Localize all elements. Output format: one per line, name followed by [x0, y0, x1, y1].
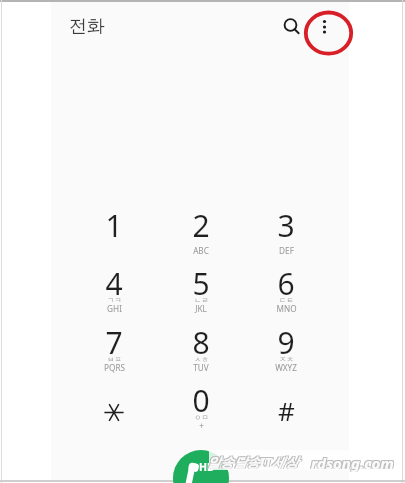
button[interactable]	[243, 385, 329, 443]
staticText: WXYZ	[275, 362, 297, 373]
button[interactable]: Star	[71, 386, 157, 438]
staticText: JKL	[195, 303, 207, 314]
button[interactable]: 전화	[62, 6, 98, 46]
staticText: 알송달송IT세상	[208, 453, 300, 471]
staticText: 알송달송IT세상	[208, 452, 300, 470]
staticText: GHI	[107, 303, 122, 314]
staticText: 4	[105, 263, 123, 304]
staticText: DEF	[279, 245, 294, 256]
staticText: ㅈㅊ	[279, 355, 294, 364]
button[interactable]	[158, 199, 244, 257]
button[interactable]: More options	[304, 8, 354, 58]
button[interactable]	[243, 316, 329, 374]
button[interactable]	[71, 316, 157, 374]
staticText: ㅅㅎ	[194, 355, 209, 364]
staticText: ㄷㅌ	[279, 296, 294, 305]
staticText: rdsong.com	[312, 452, 395, 472]
button[interactable]	[158, 257, 244, 315]
staticText: rdsong.com	[312, 453, 395, 473]
staticText: 알송달송IT세상	[207, 453, 299, 471]
staticText: 0	[192, 380, 210, 421]
staticText: rdsong.com	[310, 452, 393, 472]
button[interactable]: Call	[173, 450, 229, 483]
staticText: ABC	[193, 245, 209, 256]
staticText: 알송달송IT세상	[206, 452, 298, 470]
button[interactable]	[158, 374, 244, 432]
staticText: 5	[192, 263, 210, 304]
staticText: 6	[277, 263, 295, 304]
staticText: ㄴㄹ	[194, 296, 209, 305]
staticText: ㅂㅍ	[107, 355, 122, 364]
staticText: rdsong.com	[310, 453, 393, 473]
staticText: HD	[199, 460, 215, 474]
staticText: 7	[105, 322, 123, 363]
button[interactable]	[71, 257, 157, 315]
staticText: 알송달송IT세상	[206, 453, 298, 471]
button[interactable]	[243, 199, 329, 257]
staticText: rdsong.com	[311, 453, 394, 473]
button[interactable]	[71, 199, 157, 257]
staticText: 8	[192, 322, 210, 363]
staticText: 전화	[69, 15, 105, 38]
staticText: TUV	[193, 362, 209, 373]
button[interactable]: Search	[272, 7, 310, 45]
staticText: 2	[192, 205, 210, 246]
staticText: #	[278, 393, 295, 428]
button[interactable]	[243, 257, 329, 315]
button[interactable]	[158, 316, 244, 374]
staticText: PQRS	[104, 362, 125, 373]
staticText: ㄱㅋ	[107, 296, 122, 305]
staticText: 9	[277, 322, 295, 363]
staticText: MNO	[276, 303, 297, 314]
staticText: +	[199, 420, 204, 431]
staticText: 1	[105, 205, 123, 246]
staticText: 3	[277, 205, 295, 246]
staticText: ㅇㅁ	[194, 413, 209, 422]
